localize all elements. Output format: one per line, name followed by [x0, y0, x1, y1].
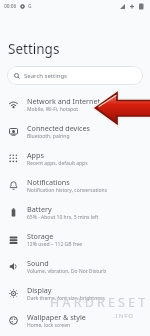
staticText: Home, lock screen — [27, 322, 71, 329]
staticText: Notification history, conversations — [27, 187, 108, 194]
staticText: Network and Internet — [27, 96, 101, 106]
staticText: Wallpaper & style — [27, 312, 86, 322]
staticText: Settings — [8, 40, 60, 58]
button[interactable]: Connected devices — [0, 118, 150, 145]
staticText: .INFO — [113, 312, 135, 320]
staticText: Volume, vibration, Do Not Disturb — [27, 268, 107, 275]
staticText: Bluetooth, pairing — [27, 133, 70, 140]
button[interactable]: Storage — [0, 226, 150, 253]
button[interactable]: Display — [0, 280, 150, 307]
staticText: G — [28, 3, 32, 10]
staticText: 12% used – 112 GB free — [27, 241, 83, 248]
staticText: 00:06 — [4, 3, 17, 10]
button[interactable]: Apps — [0, 145, 150, 172]
staticText: Battery — [27, 204, 52, 214]
staticText: 65% - About 10 hrs, 5 mins left — [27, 214, 99, 221]
staticText: Apps — [27, 150, 44, 160]
staticText: HARDRESET — [50, 294, 149, 311]
staticText: Mobile, Wi-Fi, hotspot — [27, 106, 78, 113]
staticText: Connected devices — [27, 123, 90, 133]
button[interactable]: Battery — [0, 199, 150, 226]
staticText: Display — [27, 285, 52, 295]
staticText: Recent apps, default apps — [27, 160, 88, 167]
button[interactable]: Search settings — [7, 66, 143, 85]
staticText: Search settings — [24, 72, 67, 80]
staticText: Notifications — [27, 177, 70, 187]
staticText: Sound — [27, 258, 49, 268]
button[interactable]: Sound — [0, 253, 150, 280]
button[interactable]: Network and Internet — [0, 91, 150, 118]
button[interactable]: Notifications — [0, 172, 150, 199]
staticText: Dark theme, font size, brightness — [27, 295, 105, 302]
staticText: Storage — [27, 231, 54, 241]
button[interactable]: Wallpaper & style — [0, 307, 150, 334]
